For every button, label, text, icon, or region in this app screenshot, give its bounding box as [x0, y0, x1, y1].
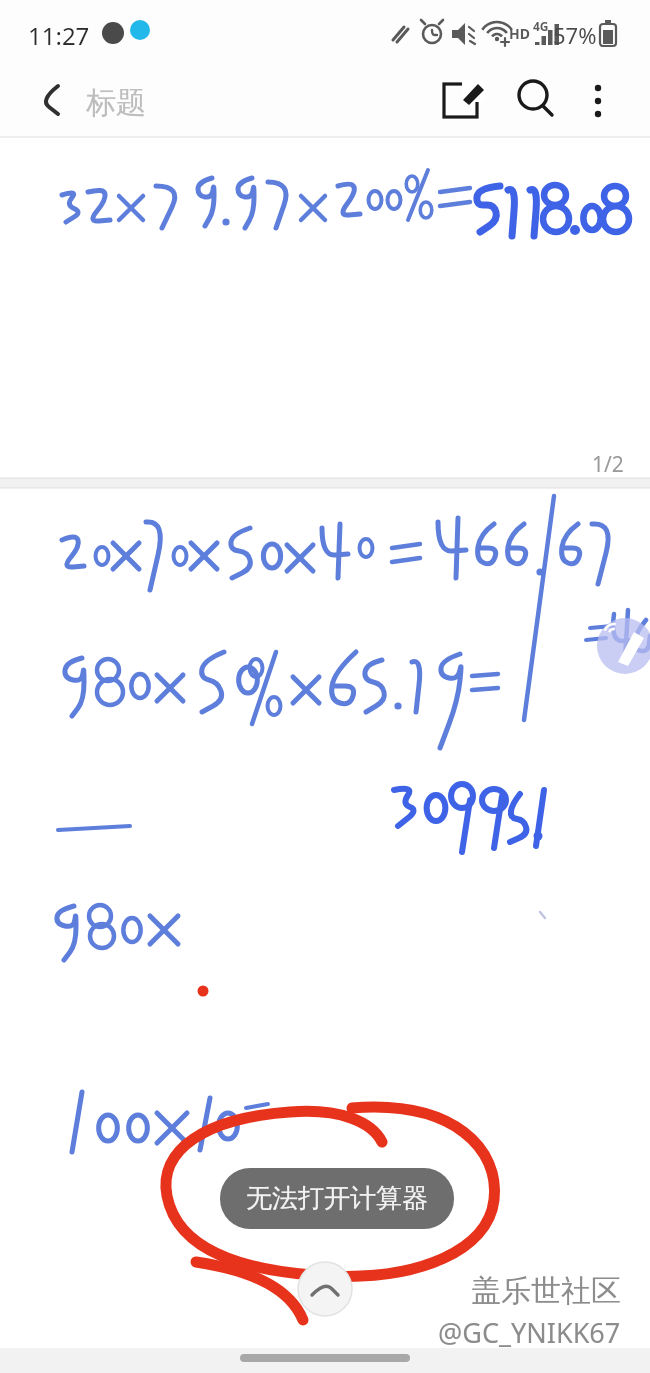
button[interactable]: 标题 [86, 84, 146, 122]
staticText: 11:27 [28, 19, 90, 52]
button[interactable]: Pen tool [597, 618, 650, 674]
staticText: 标题 [86, 84, 146, 122]
staticText: 57% [553, 20, 597, 50]
staticText: HD [509, 24, 530, 43]
staticText: 盖乐世社区 [471, 1272, 621, 1310]
button[interactable]: Edit [432, 70, 492, 130]
staticText: 1/2 [592, 450, 624, 479]
button[interactable]: Scroll up [298, 1262, 352, 1316]
staticText: @GC_YNIKK67 [438, 1314, 621, 1351]
staticText: 4G [533, 18, 549, 34]
button[interactable]: 无法打开计算器 [246, 1182, 428, 1215]
staticText: 无法打开计算器 [246, 1182, 428, 1215]
button[interactable]: Back [18, 72, 78, 132]
button[interactable]: Search [508, 70, 568, 130]
button[interactable]: More options [572, 70, 628, 126]
